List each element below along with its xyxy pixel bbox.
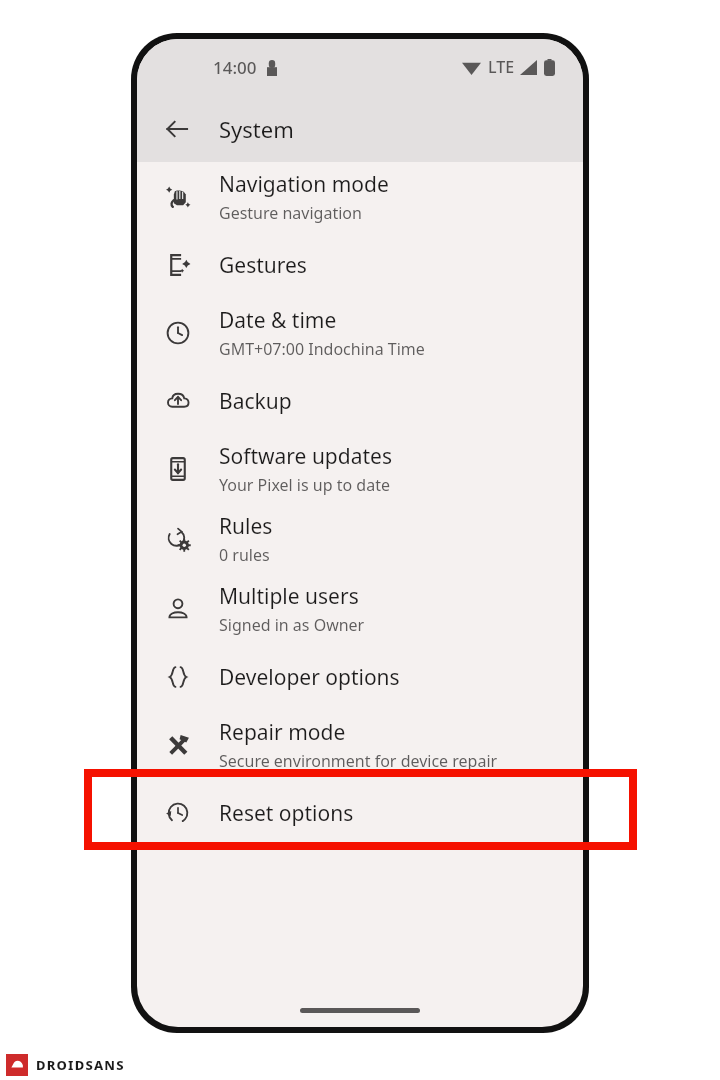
staticText: Reset options xyxy=(219,799,354,828)
staticText: LTE xyxy=(488,56,515,78)
button[interactable]: Backup xyxy=(137,368,583,434)
staticText: 0 rules xyxy=(219,544,270,566)
staticText: Software updates xyxy=(219,442,392,471)
staticText: Backup xyxy=(219,387,292,416)
staticText: Secure environment for device repair xyxy=(219,750,498,772)
staticText: Rules xyxy=(219,512,273,541)
button[interactable]: Developer options xyxy=(137,644,583,710)
staticText: GMT+07:00 Indochina Time xyxy=(219,338,425,360)
button[interactable]: Back xyxy=(153,105,201,153)
button[interactable]: Gestures xyxy=(137,232,583,298)
staticText: Date & time xyxy=(219,306,337,335)
staticText: 14:00 xyxy=(213,56,257,79)
staticText: Developer options xyxy=(219,663,400,692)
button[interactable]: Repair mode xyxy=(137,710,583,780)
staticText: Navigation mode xyxy=(219,170,389,199)
button[interactable]: Software updates xyxy=(137,434,583,504)
staticText: Your Pixel is up to date xyxy=(219,474,390,496)
staticText: Repair mode xyxy=(219,718,346,747)
button[interactable]: Reset options xyxy=(137,780,583,846)
button[interactable]: Date & time xyxy=(137,298,583,368)
button[interactable]: Multiple users xyxy=(137,574,583,644)
staticText: Signed in as Owner xyxy=(219,614,365,636)
button[interactable]: Navigation mode xyxy=(137,162,583,232)
staticText: Gestures xyxy=(219,251,307,280)
staticText: DROIDSANS xyxy=(36,1056,125,1074)
button[interactable]: Rules xyxy=(137,504,583,574)
staticText: System xyxy=(219,114,294,144)
staticText: Gesture navigation xyxy=(219,202,362,224)
staticText: Multiple users xyxy=(219,582,359,611)
